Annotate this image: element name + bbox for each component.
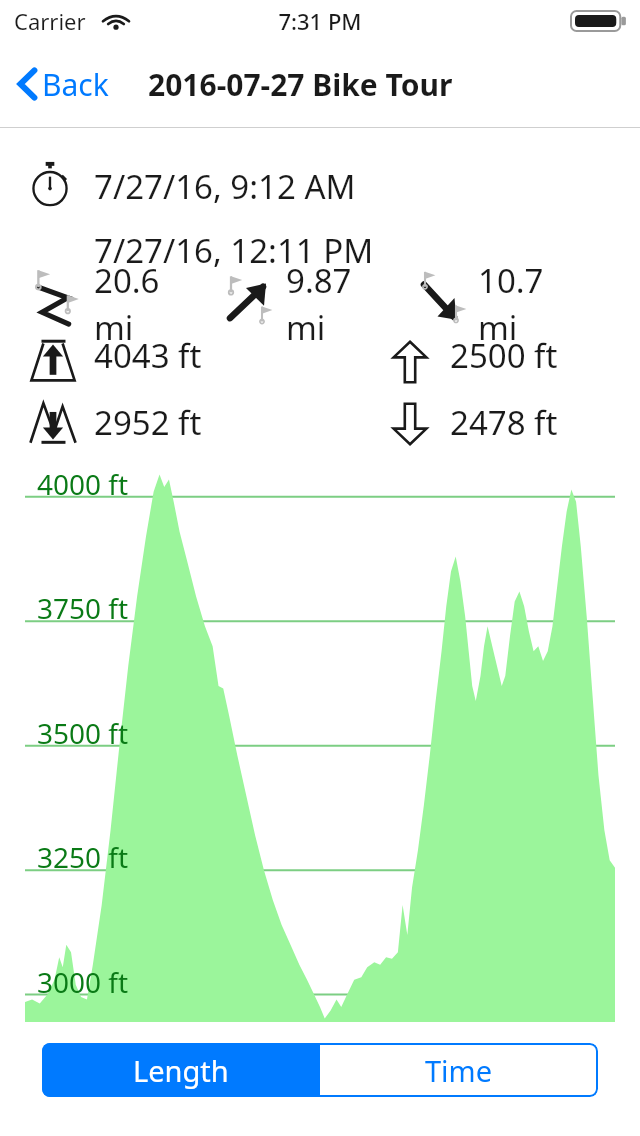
staticText: 2952 ft: [94, 400, 202, 445]
staticText: 3750 ft: [37, 589, 129, 627]
staticText: 10.7: [478, 258, 544, 303]
staticText: 3000 ft: [37, 963, 129, 1001]
staticText: 20.6: [94, 258, 160, 303]
staticText: 7/27/16, 9:12 AM: [94, 164, 356, 209]
staticText: 4043 ft: [94, 333, 202, 378]
staticText: 3250 ft: [37, 838, 129, 876]
staticText: mi: [286, 305, 326, 350]
staticText: Back: [42, 64, 109, 105]
staticText: mi: [94, 305, 134, 350]
staticText: 4000 ft: [37, 465, 129, 503]
staticText: 9.87: [286, 258, 352, 303]
staticText: 7:31 PM: [0, 6, 640, 36]
staticText: mi: [478, 305, 518, 350]
button[interactable]: Length: [42, 1043, 320, 1097]
staticText: 3500 ft: [37, 714, 129, 752]
button[interactable]: Time: [320, 1043, 598, 1097]
staticText: 2478 ft: [450, 400, 558, 445]
staticText: Length: [133, 1051, 229, 1090]
staticText: 2500 ft: [450, 333, 558, 378]
staticText: 2016-07-27 Bike Tour: [148, 64, 453, 105]
staticText: 7/27/16, 12:11 PM: [94, 228, 374, 273]
staticText: Time: [425, 1051, 493, 1090]
button[interactable]: Back: [10, 40, 117, 128]
staticText: Carrier: [14, 6, 86, 36]
